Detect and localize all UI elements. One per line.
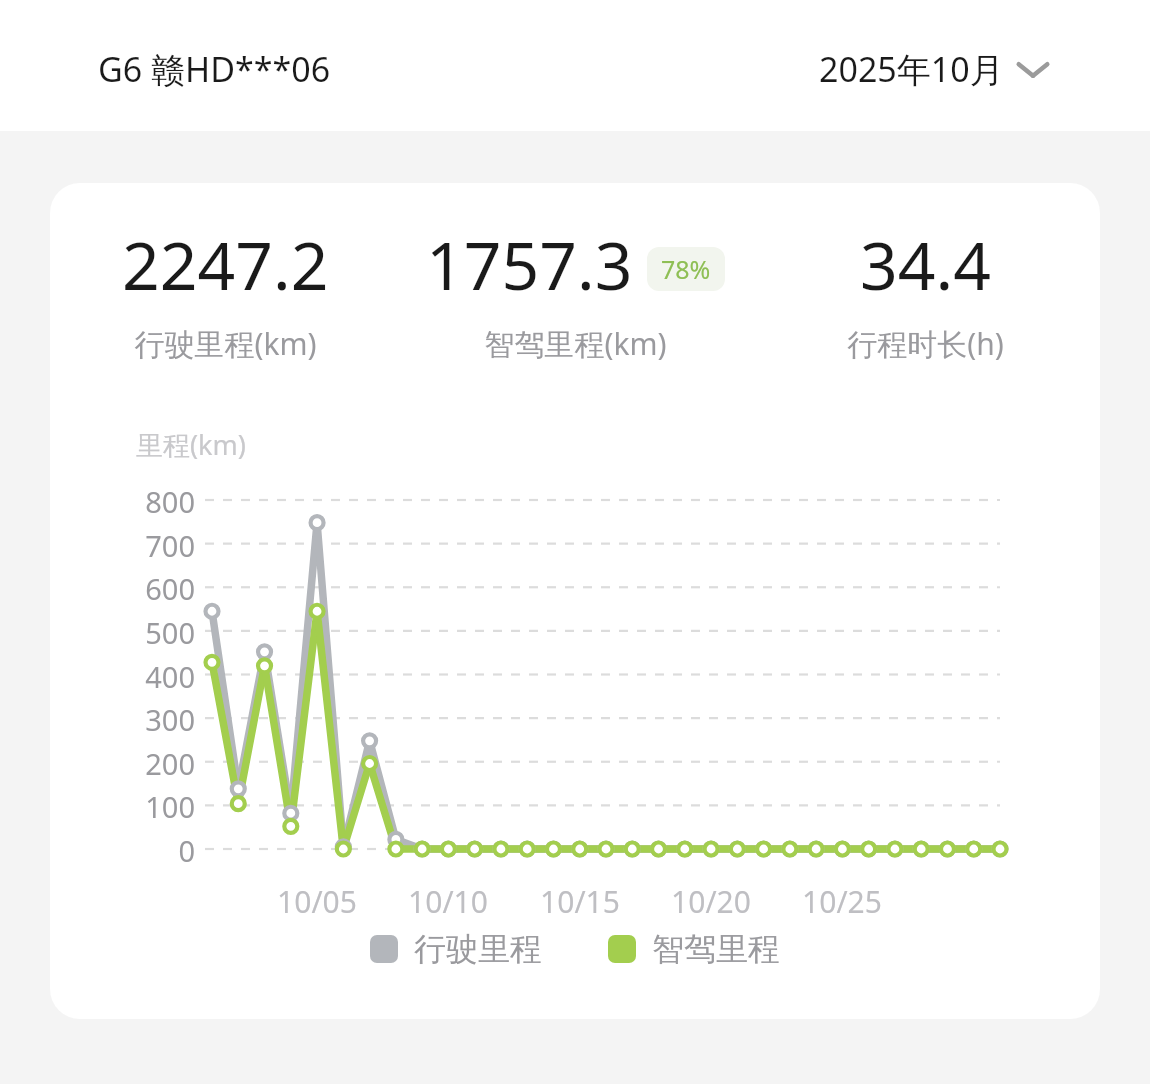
staticText: 智驾里程(km) <box>484 323 667 364</box>
staticText: 200 <box>50 744 195 783</box>
staticText: 500 <box>50 613 195 652</box>
staticText: 里程(km) <box>136 426 246 463</box>
staticText: 78% <box>661 252 711 286</box>
staticText: 0 <box>50 831 195 870</box>
staticText: 10/15 <box>520 881 640 922</box>
button[interactable]: 行驶里程 <box>366 925 546 973</box>
button[interactable]: 1757.3 <box>400 219 750 364</box>
staticText: 2025年10月 <box>819 46 1004 92</box>
staticText: 300 <box>50 700 195 739</box>
staticText: 行程时长(h) <box>847 323 1004 364</box>
staticText: 400 <box>50 657 195 696</box>
staticText: 智驾里程 <box>652 929 780 969</box>
staticText: 600 <box>50 569 195 608</box>
button[interactable]: 2247.2 <box>50 219 400 364</box>
staticText: 行驶里程 <box>414 929 542 969</box>
staticText: G6 赣HD***06 <box>98 46 331 92</box>
staticText: 100 <box>50 787 195 826</box>
staticText: 10/20 <box>651 881 771 922</box>
other: Select month <box>1016 57 1050 81</box>
staticText: 10/10 <box>388 881 508 922</box>
staticText: 10/05 <box>257 881 377 922</box>
staticText: 行驶里程(km) <box>134 323 317 364</box>
staticText: 10/25 <box>782 881 902 922</box>
staticText: 800 <box>50 482 195 521</box>
button[interactable]: 智驾里程 <box>604 925 784 973</box>
staticText: 2247.2 <box>122 219 329 309</box>
button[interactable]: 2025年10月 <box>815 40 1054 98</box>
staticText: 34.4 <box>860 219 991 309</box>
staticText: 1757.3 <box>426 219 633 309</box>
staticText: 700 <box>50 526 195 565</box>
button[interactable]: 34.4 <box>750 219 1100 364</box>
